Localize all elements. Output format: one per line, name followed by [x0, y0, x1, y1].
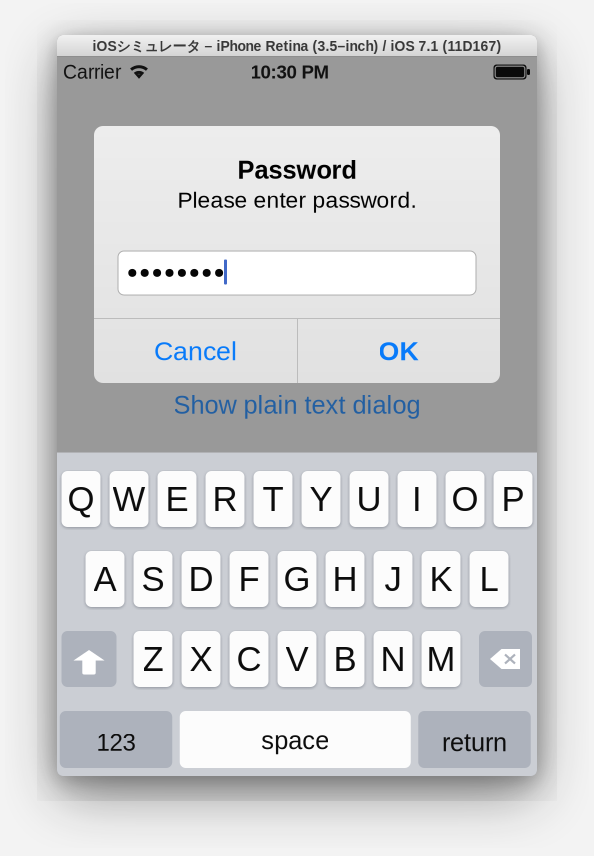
button[interactable]: Shift — [61, 631, 116, 687]
staticText: space — [261, 726, 329, 755]
button[interactable]: D — [181, 551, 220, 607]
staticText: T — [262, 480, 283, 518]
button[interactable]: W — [109, 471, 148, 527]
button[interactable]: A — [85, 551, 124, 607]
button[interactable]: 123 — [60, 711, 172, 768]
staticText: 10:30 PM — [250, 62, 329, 82]
button[interactable]: M — [421, 631, 460, 687]
staticText: Q — [67, 480, 94, 518]
button[interactable]: X — [181, 631, 220, 687]
button[interactable]: L — [469, 551, 508, 607]
staticText: OK — [378, 336, 418, 366]
button[interactable]: N — [373, 631, 412, 687]
staticText: A — [93, 560, 116, 598]
staticText: iOSシミュレータ – iPhone Retina (3.5–inch) / i… — [92, 38, 501, 55]
button[interactable]: Delete — [479, 631, 532, 687]
button[interactable]: I — [397, 471, 436, 527]
button[interactable]: Q — [61, 471, 100, 527]
button[interactable]: K — [421, 551, 460, 607]
staticText: F — [238, 560, 259, 598]
staticText: J — [384, 560, 401, 598]
staticText: N — [380, 640, 405, 678]
button[interactable]: OK — [297, 319, 500, 383]
staticText: return — [442, 728, 507, 757]
button[interactable]: return — [418, 711, 531, 768]
button[interactable]: J — [373, 551, 412, 607]
staticText: K — [429, 560, 452, 598]
staticText: W — [112, 480, 145, 518]
staticText: O — [451, 480, 478, 518]
staticText: Password — [237, 156, 356, 184]
button[interactable]: T — [253, 471, 292, 527]
button[interactable]: V — [277, 631, 316, 687]
staticText: V — [285, 640, 308, 678]
staticText: Please enter password. — [177, 187, 416, 213]
staticText: Cancel — [154, 336, 237, 366]
staticText: I — [412, 480, 422, 518]
staticText: Z — [142, 640, 163, 678]
button[interactable]: O — [445, 471, 484, 527]
staticText: E — [165, 480, 188, 518]
staticText: L — [479, 560, 498, 598]
staticText: B — [333, 640, 356, 678]
staticText: 123 — [96, 729, 135, 756]
button[interactable]: Cancel — [94, 319, 297, 383]
staticText: Carrier — [63, 61, 121, 83]
button[interactable]: R — [205, 471, 244, 527]
button[interactable]: F — [229, 551, 268, 607]
staticText: H — [332, 560, 357, 598]
button[interactable]: Z — [133, 631, 172, 687]
staticText: U — [356, 480, 381, 518]
button[interactable]: U — [349, 471, 388, 527]
staticText: C — [236, 640, 261, 678]
staticText: Y — [309, 480, 332, 518]
button[interactable]: E — [157, 471, 196, 527]
button[interactable]: P — [493, 471, 532, 527]
staticText: G — [283, 560, 310, 598]
button[interactable]: S — [133, 551, 172, 607]
staticText: X — [189, 640, 212, 678]
staticText: R — [212, 480, 237, 518]
staticText: S — [141, 560, 164, 598]
button[interactable]: H — [325, 551, 364, 607]
staticText: P — [501, 480, 524, 518]
staticText: D — [188, 560, 213, 598]
button[interactable]: C — [229, 631, 268, 687]
button[interactable]: Show plain text dialog — [57, 390, 537, 420]
button[interactable]: B — [325, 631, 364, 687]
button[interactable]: Y — [301, 471, 340, 527]
button[interactable]: space — [180, 711, 411, 768]
staticText: M — [426, 640, 455, 678]
staticText: Show plain text dialog — [173, 391, 420, 419]
button[interactable]: G — [277, 551, 316, 607]
